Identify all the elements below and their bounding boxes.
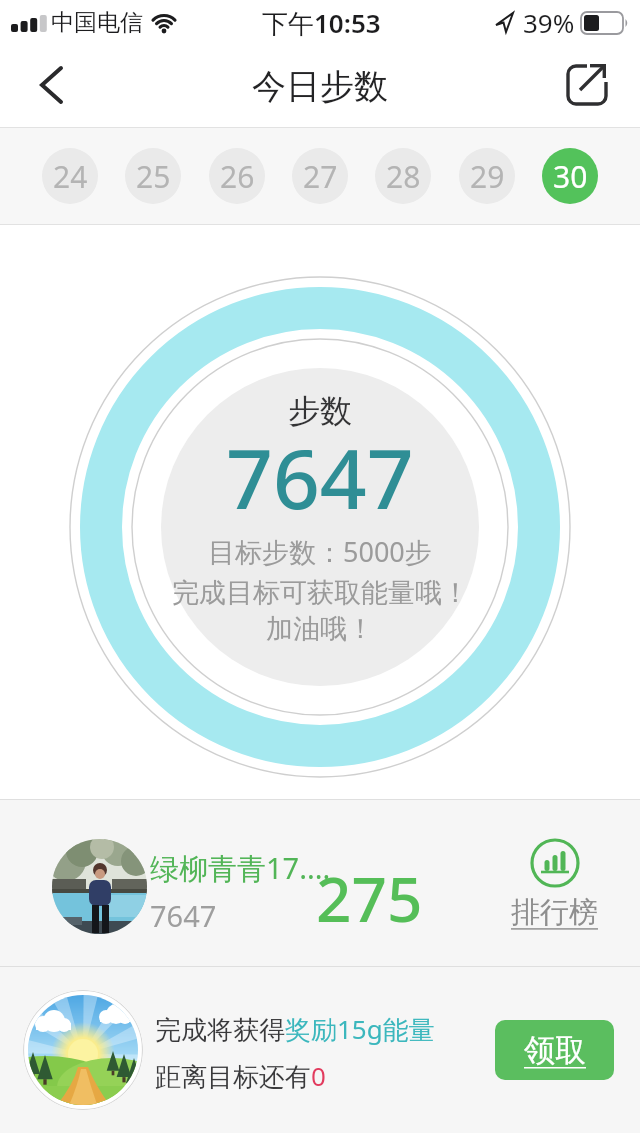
staticText: 39%	[523, 5, 575, 40]
button[interactable]: 领取	[495, 1020, 614, 1080]
staticText: 275	[316, 856, 423, 940]
button[interactable]	[564, 62, 612, 110]
staticText: 距离目标还有0	[155, 1058, 326, 1094]
button[interactable]: 24	[42, 148, 98, 204]
staticText: 完成将获得奖励15g能量	[155, 1011, 435, 1047]
staticText: 26	[220, 156, 255, 197]
staticText: 24	[53, 156, 88, 197]
staticText: 绿柳青青17....	[150, 848, 331, 888]
staticText: 排行榜	[511, 894, 598, 931]
staticText: 27	[303, 156, 338, 197]
button[interactable]: 29	[459, 148, 515, 204]
button[interactable]: 26	[209, 148, 265, 204]
staticText: 7647	[150, 896, 217, 935]
button[interactable]: 27	[292, 148, 348, 204]
button[interactable]: 绿柳青青17....	[0, 800, 640, 966]
staticText: 今日步数	[252, 65, 388, 108]
staticText: 29	[470, 156, 505, 197]
button[interactable]: 25	[125, 148, 181, 204]
staticText: 28	[386, 156, 421, 197]
button[interactable]	[30, 64, 74, 108]
staticText: 步数	[288, 391, 352, 431]
staticText: 领取	[524, 1031, 586, 1070]
button[interactable]: 28	[375, 148, 431, 204]
staticText: 30	[553, 156, 588, 197]
button[interactable]: 排行榜	[511, 838, 598, 931]
staticText: 7647	[226, 421, 414, 533]
button[interactable]: 30	[542, 148, 598, 204]
staticText: 下午10:53	[262, 5, 381, 41]
staticText: 加油哦！	[266, 612, 374, 646]
staticText: 目标步数：5000步	[208, 533, 432, 570]
staticText: 中国电信	[51, 8, 143, 37]
staticText: 25	[136, 156, 171, 197]
staticText: 完成目标可获取能量哦！	[172, 576, 469, 610]
